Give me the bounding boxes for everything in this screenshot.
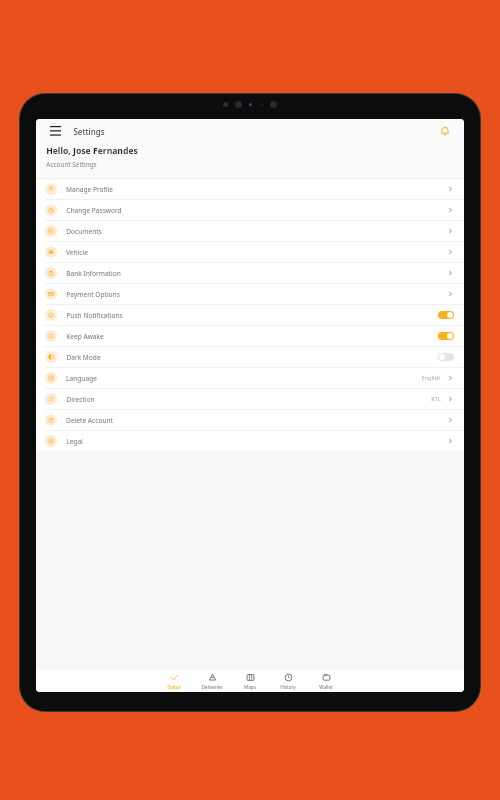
button[interactable]: Legal (36, 431, 464, 451)
button[interactable]: Toggle on (438, 311, 454, 319)
staticText: Change Password (66, 206, 122, 215)
button[interactable]: Documents (36, 221, 464, 242)
button[interactable]: Toggle on (438, 332, 454, 340)
button[interactable]: Vehicle (36, 242, 464, 263)
button[interactable]: Notifications (436, 122, 454, 140)
staticText: Documents (66, 227, 102, 236)
staticText: Wallet (319, 684, 333, 690)
button[interactable]: Status (155, 673, 193, 690)
button[interactable]: Push Notifications (36, 305, 464, 326)
button[interactable]: Direction (36, 389, 464, 410)
staticText: Delete Account (66, 416, 113, 425)
staticText: Maps (244, 684, 256, 690)
button[interactable]: Language (36, 368, 464, 389)
staticText: Account Settings (46, 160, 97, 169)
button[interactable]: Bank Information (36, 263, 464, 284)
button[interactable]: History (269, 673, 307, 690)
staticText: Language (66, 374, 97, 383)
staticText: History (280, 684, 296, 690)
button[interactable]: Keep Awake (36, 326, 464, 347)
button[interactable]: Open navigation menu (46, 122, 64, 140)
button[interactable]: Manage Profile (36, 179, 464, 200)
staticText: Bank Information (66, 269, 121, 278)
button[interactable]: Delete Account (36, 410, 464, 431)
button[interactable]: Wallet (307, 673, 345, 690)
staticText: Hello, Jose Fernandes (46, 145, 138, 157)
staticText: Manage Profile (66, 185, 113, 194)
button[interactable]: Payment Options (36, 284, 464, 305)
staticText: RTL (431, 395, 441, 403)
staticText: Dark Mode (66, 353, 101, 362)
staticText: Settings (73, 126, 105, 137)
staticText: Status (167, 684, 181, 690)
staticText: Vehicle (66, 248, 88, 257)
staticText: English (421, 374, 441, 382)
staticText: Keep Awake (66, 332, 104, 341)
button[interactable]: Toggle off (438, 353, 454, 361)
staticText: Direction (66, 395, 95, 404)
staticText: Payment Options (66, 290, 120, 299)
staticText: Push Notifications (66, 311, 123, 320)
button[interactable]: Deliveries (193, 673, 231, 690)
button[interactable]: Maps (231, 673, 269, 690)
staticText: Deliveries (201, 684, 223, 690)
staticText: Legal (66, 437, 83, 446)
button[interactable]: Change Password (36, 200, 464, 221)
button[interactable]: Dark Mode (36, 347, 464, 368)
